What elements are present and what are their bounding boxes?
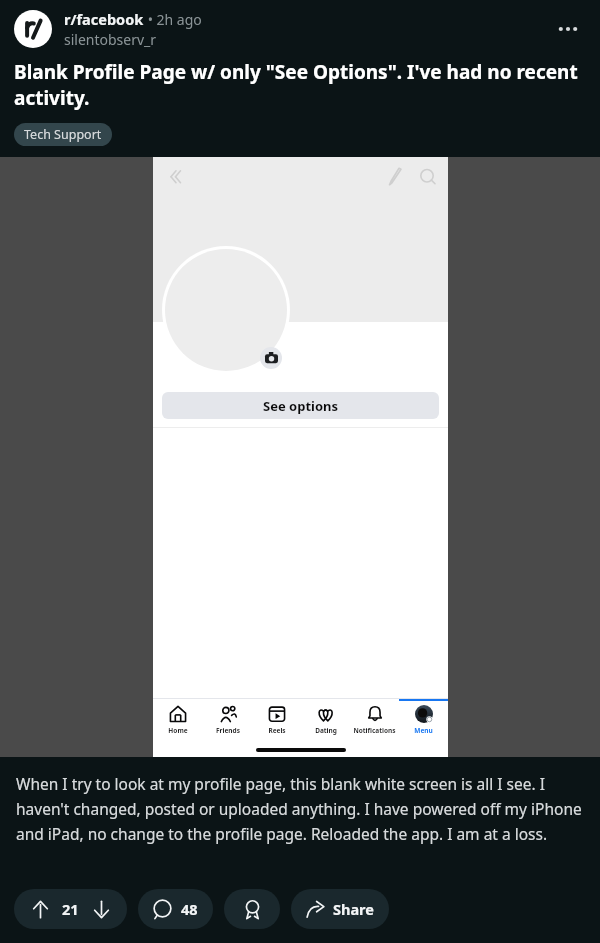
staticText: Friends bbox=[216, 726, 240, 735]
button[interactable]: More options bbox=[548, 9, 588, 49]
staticText: • 2h ago bbox=[144, 10, 202, 29]
staticText: Home bbox=[168, 726, 188, 735]
button[interactable] bbox=[14, 10, 52, 48]
button[interactable]: Profile picture bbox=[165, 249, 287, 371]
button[interactable]: Menu bbox=[399, 699, 448, 743]
staticText: 21 bbox=[62, 899, 79, 919]
button[interactable]: Tech Support bbox=[14, 123, 112, 146]
button[interactable]: Dating bbox=[301, 699, 350, 743]
staticText: 48 bbox=[181, 899, 198, 919]
staticText: silentobserv_r bbox=[64, 30, 157, 49]
staticText: Reels bbox=[268, 726, 286, 735]
button[interactable]: Share bbox=[291, 889, 389, 929]
button[interactable]: Change photo bbox=[260, 347, 282, 369]
staticText: Share bbox=[333, 899, 374, 919]
button[interactable]: See options bbox=[162, 392, 439, 419]
button[interactable]: Reels bbox=[252, 699, 301, 743]
staticText: Blank Profile Page w/ only "See Options"… bbox=[14, 59, 586, 111]
staticText: See options bbox=[263, 397, 339, 415]
button[interactable]: Friends bbox=[203, 699, 252, 743]
button[interactable]: Home bbox=[153, 699, 203, 743]
staticText: Menu bbox=[414, 726, 433, 735]
button[interactable]: Notifications bbox=[350, 699, 399, 743]
button[interactable]: Give award bbox=[224, 889, 280, 929]
button[interactable]: Upvote bbox=[27, 896, 53, 922]
staticText: Dating bbox=[315, 726, 337, 735]
staticText: Notifications bbox=[353, 726, 396, 735]
button[interactable]: 48 bbox=[138, 889, 213, 929]
staticText: Tech Support bbox=[24, 126, 102, 143]
button[interactable]: Downvote bbox=[88, 896, 114, 922]
staticText: When I try to look at my profile page, t… bbox=[16, 773, 582, 844]
staticText: r/facebook bbox=[64, 9, 144, 29]
